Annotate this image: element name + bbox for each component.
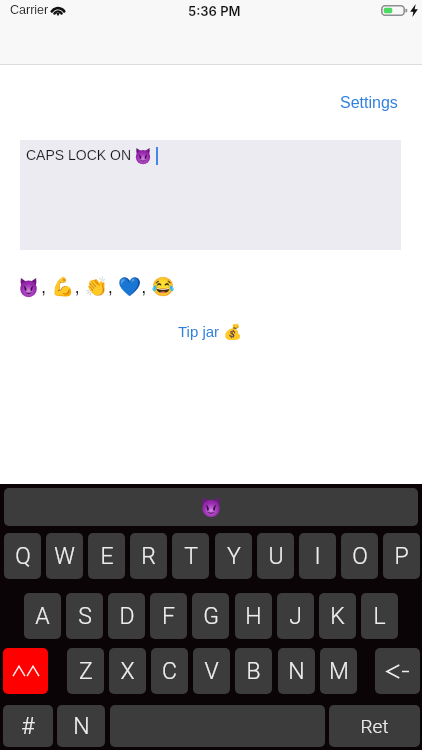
button[interactable]: #: [3, 705, 53, 747]
button[interactable]: K: [319, 593, 356, 639]
button[interactable]: P: [383, 533, 420, 579]
staticText: H: [245, 603, 262, 630]
button[interactable]: W: [46, 533, 83, 579]
staticText: Settings: [340, 94, 398, 112]
staticText: R: [141, 543, 156, 570]
staticText: 5:36 PM: [188, 3, 241, 19]
button[interactable]: B: [235, 648, 272, 694]
button[interactable]: Backspace: [375, 648, 420, 694]
staticText: CAPS LOCK ON: [26, 147, 132, 163]
button[interactable]: Tip jar 💰: [170, 318, 251, 346]
button[interactable]: E: [88, 533, 125, 579]
staticText: Carrier: [10, 3, 49, 17]
button[interactable]: J: [277, 593, 314, 639]
button[interactable]: Ret: [329, 705, 420, 747]
staticText: F: [162, 603, 175, 630]
staticText: L: [373, 603, 386, 630]
staticText: D: [119, 603, 135, 630]
button[interactable]: Settings: [326, 89, 412, 117]
staticText: O: [352, 543, 368, 570]
button[interactable]: C: [151, 648, 188, 694]
staticText: 😈, 💪, 👏, 💙, 😂: [18, 276, 175, 298]
button[interactable]: G: [192, 593, 229, 639]
staticText: Ret: [360, 715, 389, 737]
button[interactable]: Y: [215, 533, 252, 579]
staticText: V: [204, 658, 219, 685]
button[interactable]: S: [66, 593, 103, 639]
staticText: Q: [15, 543, 31, 570]
staticText: Tip jar 💰: [178, 323, 243, 341]
staticText: B: [246, 658, 261, 685]
staticText: K: [330, 603, 345, 630]
button[interactable]: D: [108, 593, 145, 639]
staticText: N: [288, 658, 305, 685]
button[interactable]: Q: [4, 533, 41, 579]
staticText: #: [21, 713, 35, 740]
staticText: U: [268, 543, 284, 570]
staticText: S: [78, 603, 92, 630]
staticText: Y: [227, 543, 241, 570]
button[interactable]: Emoji suggestion: [4, 488, 418, 526]
button[interactable]: A: [24, 593, 61, 639]
staticText: X: [120, 658, 135, 685]
button[interactable]: V: [193, 648, 230, 694]
button[interactable]: M: [320, 648, 357, 694]
button[interactable]: F: [150, 593, 187, 639]
staticText: G: [203, 603, 219, 630]
button[interactable]: L: [361, 593, 398, 639]
staticText: A: [35, 603, 50, 630]
button[interactable]: U: [257, 533, 294, 579]
button[interactable]: Text input: [20, 140, 401, 250]
button[interactable]: N: [278, 648, 315, 694]
staticText: P: [394, 543, 409, 570]
staticText: C: [162, 658, 177, 685]
button[interactable]: H: [235, 593, 272, 639]
button[interactable]: R: [130, 533, 167, 579]
button[interactable]: X: [109, 648, 146, 694]
staticText: W: [54, 543, 75, 570]
button[interactable]: Shift / caps lock: [3, 648, 48, 694]
staticText: M: [329, 658, 349, 685]
button[interactable]: I: [299, 533, 336, 579]
staticText: E: [100, 543, 114, 570]
staticText: J: [289, 603, 302, 630]
staticText: N: [73, 713, 90, 740]
button[interactable]: T: [172, 533, 209, 579]
staticText: Z: [79, 658, 93, 685]
staticText: I: [314, 543, 321, 570]
staticText: T: [184, 543, 198, 570]
button[interactable]: Z: [67, 648, 104, 694]
button[interactable]: N: [57, 705, 105, 747]
button[interactable]: O: [341, 533, 378, 579]
